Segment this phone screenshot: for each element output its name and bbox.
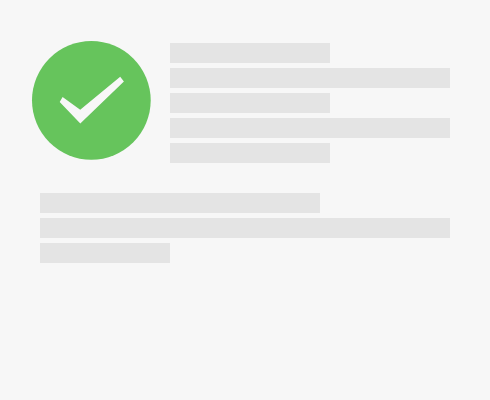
button[interactable]: Completed (32, 41, 151, 160)
button[interactable]: Description loading (40, 193, 450, 263)
button[interactable]: Title and details loading (170, 43, 450, 163)
